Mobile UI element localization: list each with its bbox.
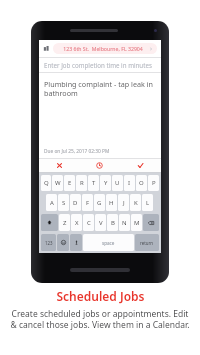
button[interactable]: 123 6th St. Melbourne, FL 32904 [53, 43, 157, 54]
button[interactable]: T [88, 175, 99, 191]
button[interactable]: return [135, 234, 159, 251]
staticText: O [139, 179, 144, 187]
button[interactable]: Q [41, 175, 51, 191]
button[interactable]: F [82, 194, 93, 211]
staticText: S [62, 199, 66, 207]
button[interactable]: V [95, 214, 106, 231]
button[interactable]: E [64, 175, 75, 191]
button[interactable]: Dictate [70, 234, 82, 251]
button[interactable]: D [70, 194, 81, 211]
button[interactable]: I [124, 175, 135, 191]
staticText: W [55, 179, 61, 187]
staticText: Plumbing complaint - tap leak in bathroo… [44, 79, 156, 99]
staticText: Y [104, 179, 108, 187]
button[interactable]: Location [39, 40, 161, 57]
button[interactable]: N [119, 214, 130, 231]
button[interactable]: P [148, 175, 159, 191]
staticText: A [50, 199, 54, 207]
button[interactable]: U [112, 175, 123, 191]
button[interactable]: Cancel job [39, 159, 79, 172]
button[interactable]: Z [59, 214, 70, 231]
staticText: 123 [45, 240, 53, 246]
staticText: E [68, 179, 72, 187]
staticText: U [115, 179, 120, 187]
button[interactable]: W [52, 175, 63, 191]
staticText: N [122, 219, 127, 227]
staticText: M [134, 219, 140, 227]
button[interactable]: Enter Job completion time in minutes [39, 58, 161, 72]
staticText: P [152, 179, 156, 187]
button[interactable]: Shift [41, 214, 58, 231]
button[interactable]: 123 [41, 234, 56, 251]
button[interactable]: Delete [143, 214, 159, 231]
staticText: B [111, 219, 115, 227]
staticText: Enter Job completion time in minutes [44, 61, 152, 69]
staticText: J [123, 199, 125, 207]
other: Location [43, 45, 50, 52]
staticText: F [86, 199, 90, 207]
button[interactable]: K [130, 194, 141, 211]
button[interactable]: C [83, 214, 94, 231]
button[interactable]: Complete job [120, 159, 161, 172]
button[interactable]: R [76, 175, 87, 191]
staticText: Q [44, 179, 49, 187]
button[interactable]: O [136, 175, 147, 191]
staticText: H [109, 199, 114, 207]
staticText: Z [63, 219, 67, 227]
staticText: space [102, 240, 115, 246]
button[interactable]: B [107, 214, 118, 231]
staticText: C [87, 219, 91, 227]
button[interactable]: M [131, 214, 142, 231]
staticText: D [73, 199, 78, 207]
button[interactable]: G [94, 194, 105, 211]
staticText: Due on Jul 25, 2017 02:30 PM [44, 148, 110, 155]
button[interactable]: L [142, 194, 153, 211]
button[interactable]: H [106, 194, 117, 211]
button[interactable]: J [118, 194, 129, 211]
staticText: Scheduled Jobs [56, 288, 145, 304]
button[interactable]: Y [100, 175, 111, 191]
staticText: X [75, 219, 79, 227]
staticText: return [140, 240, 154, 246]
staticText: T [92, 179, 96, 187]
button[interactable]: Snooze job [79, 159, 120, 172]
button[interactable]: space [83, 234, 134, 251]
button[interactable]: Emoji [57, 234, 69, 251]
staticText: L [146, 199, 150, 207]
staticText: R [80, 179, 84, 187]
staticText: V [99, 219, 103, 227]
staticText: 123 6th St. Melbourne, FL 32904 [57, 45, 149, 52]
staticText: Create scheduled jobs or appointments. E… [8, 308, 192, 330]
staticText: K [134, 199, 138, 207]
button[interactable]: X [71, 214, 82, 231]
staticText: I [128, 179, 131, 187]
button[interactable]: A [46, 194, 57, 211]
button[interactable]: Plumbing complaint - tap leak in bathroo… [39, 73, 161, 158]
staticText: G [97, 199, 102, 207]
button[interactable]: S [58, 194, 69, 211]
